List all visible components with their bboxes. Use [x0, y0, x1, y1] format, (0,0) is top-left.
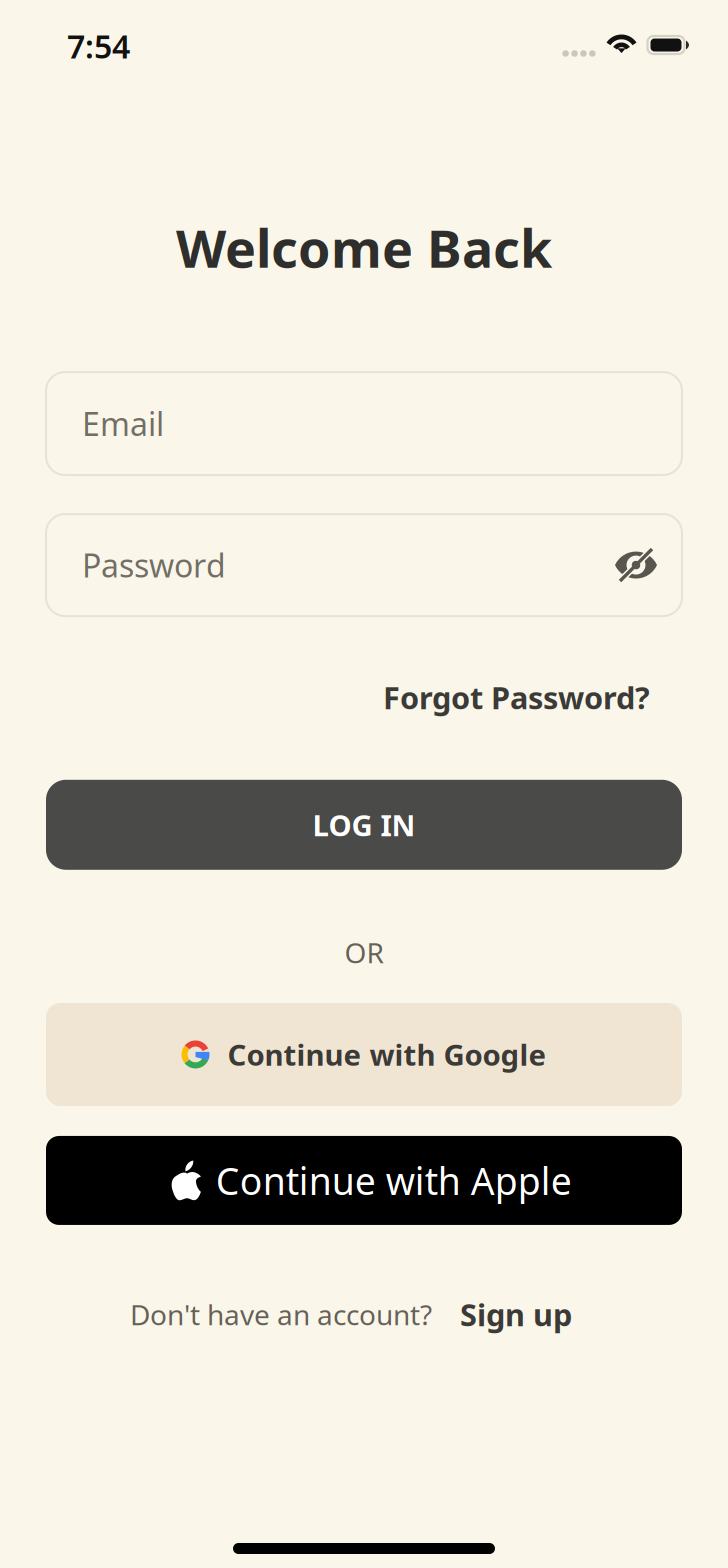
- button[interactable]: LOG IN: [46, 780, 682, 870]
- button[interactable]: Sign up: [460, 1294, 572, 1335]
- staticText: Email: [82, 402, 164, 445]
- button[interactable]: Continue with Google: [46, 1003, 682, 1106]
- button[interactable]: Continue with Apple: [46, 1136, 682, 1225]
- staticText: Sign up: [460, 1294, 572, 1335]
- staticText: 7:54: [67, 25, 130, 67]
- staticText: Continue with Apple: [216, 1156, 572, 1205]
- staticText: Continue with Google: [227, 1035, 546, 1074]
- staticText: LOG IN: [312, 805, 415, 844]
- staticText: Forgot Password?: [383, 677, 650, 718]
- staticText: OR: [344, 934, 383, 971]
- staticText: Password: [82, 544, 226, 586]
- button[interactable]: Show password: [612, 541, 660, 589]
- button[interactable]: Forgot Password?: [383, 677, 650, 718]
- staticText: Welcome Back: [176, 213, 552, 282]
- staticText: Don't have an account?: [130, 1296, 432, 1333]
